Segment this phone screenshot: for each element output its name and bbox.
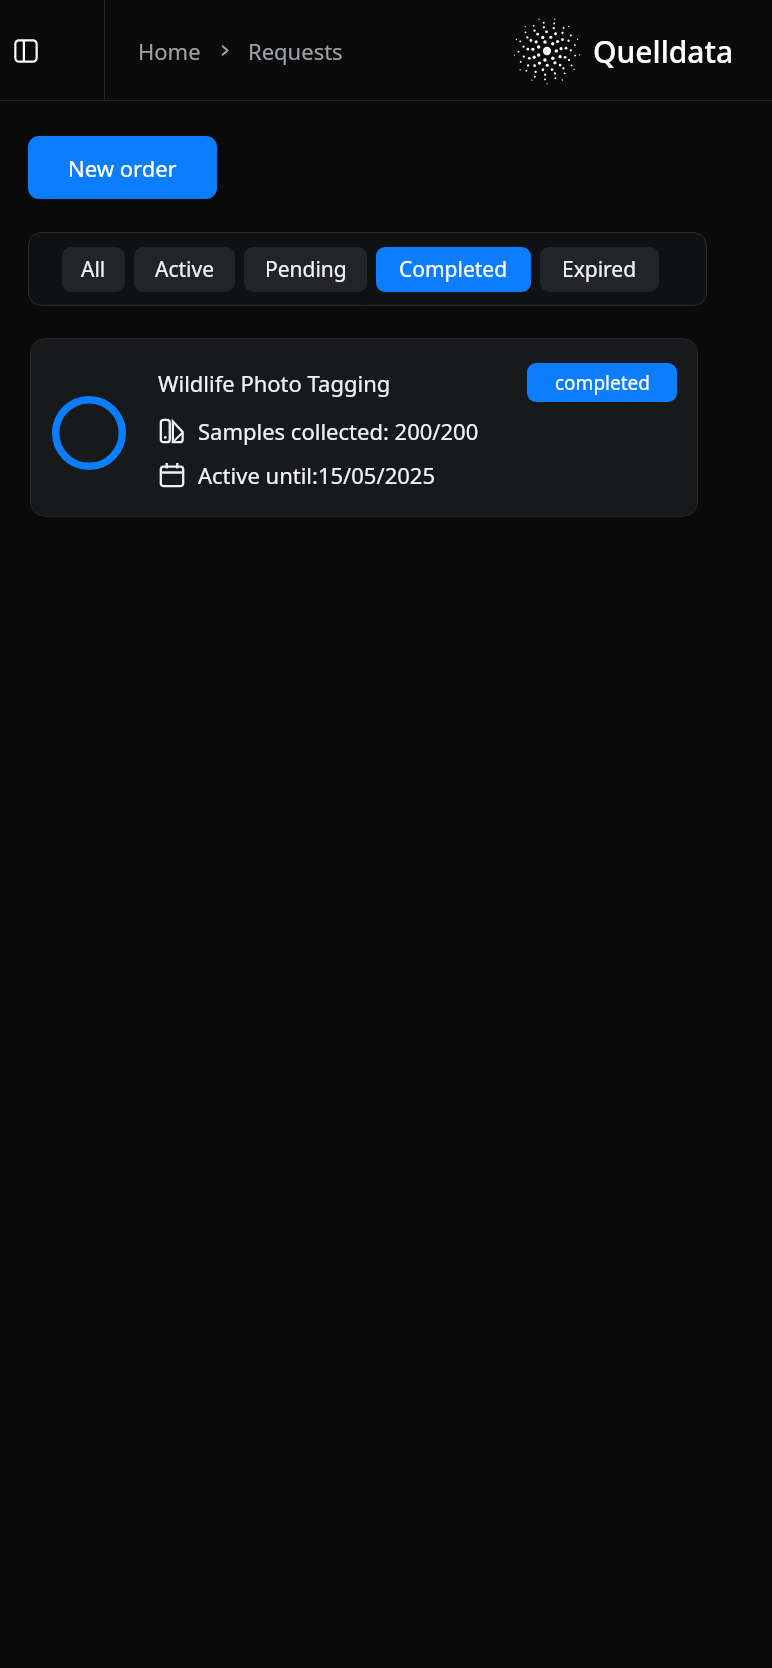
staticText: completed (555, 370, 650, 396)
button[interactable]: Active (134, 247, 235, 292)
staticText: Completed (399, 255, 508, 284)
button[interactable]: New order (28, 136, 217, 199)
other: Samples collected (158, 417, 186, 445)
button[interactable]: All (62, 247, 125, 292)
staticText: Samples collected: 200/200 (198, 416, 479, 446)
button[interactable]: Wildlife Photo Tagging (30, 338, 698, 517)
other: Active until (158, 461, 186, 489)
staticText: Wildlife Photo Tagging (158, 368, 391, 398)
button[interactable]: Expired (540, 247, 659, 292)
staticText: New order (68, 153, 177, 183)
staticText: Home (138, 36, 201, 66)
staticText: All (81, 255, 106, 284)
button[interactable]: Pending (244, 247, 367, 292)
button[interactable]: Home (138, 36, 201, 66)
button[interactable]: Completed (376, 247, 531, 292)
staticText: Expired (562, 255, 637, 284)
staticText: Active (155, 255, 215, 284)
staticText: Requests (248, 36, 343, 66)
staticText: Pending (265, 255, 347, 284)
button[interactable]: completed (527, 363, 677, 402)
button[interactable]: Toggle sidebar (0, 0, 52, 101)
button[interactable]: Requests (248, 36, 343, 66)
staticText: Quelldata (593, 31, 734, 72)
staticText: Active until:15/05/2025 (198, 460, 435, 490)
